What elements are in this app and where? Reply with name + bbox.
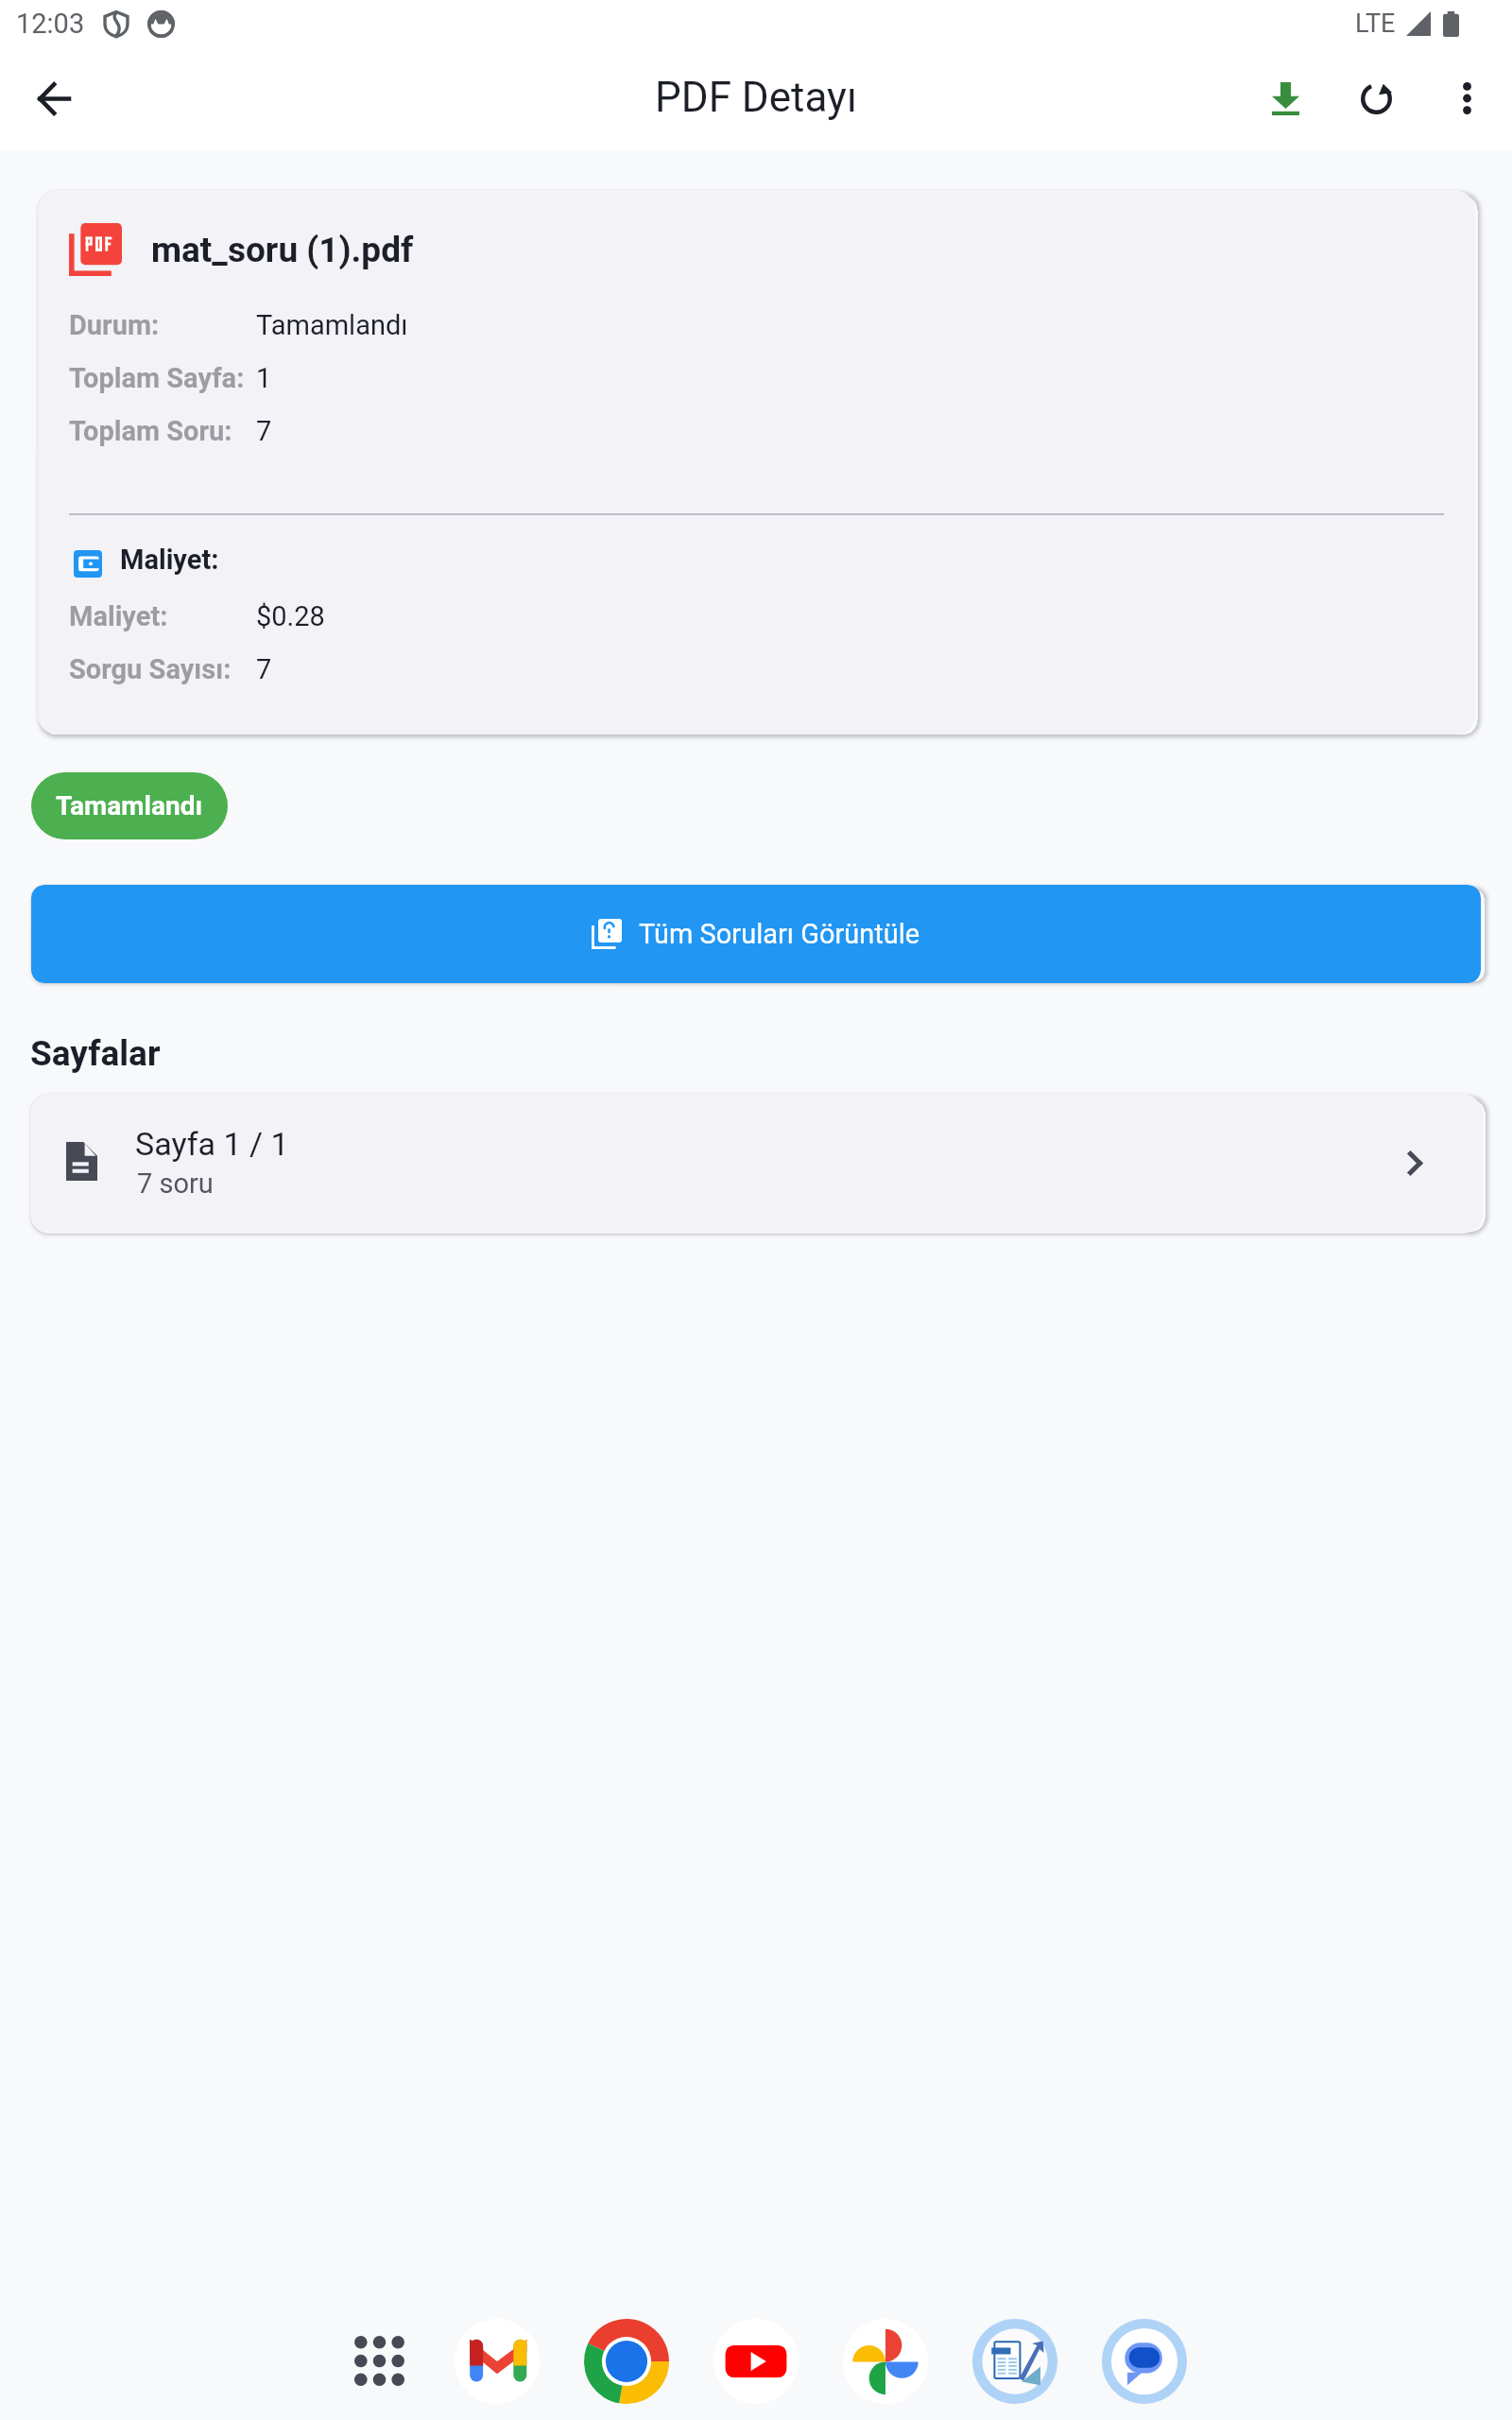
staticText: 7 [256,415,272,447]
staticText: Sorgu Sayısı: [69,653,232,685]
staticText: Tamamlandı [256,309,408,341]
button[interactable]: Photos [820,2296,950,2420]
staticText: $0.28 [256,600,325,632]
button[interactable]: Back [15,60,91,136]
button[interactable]: Sayfa 1 / 1 [30,1094,1482,1234]
button[interactable]: All apps [315,2296,432,2420]
button[interactable]: More options [1431,62,1503,134]
staticText: Maliyet: [69,600,168,632]
button[interactable]: Chrome [561,2296,691,2420]
button[interactable]: Refresh [1340,62,1412,134]
staticText: Sayfalar [30,1033,161,1074]
button[interactable]: Gmail [432,2296,561,2420]
staticText: 1 [256,362,272,394]
staticText: Toplam Sayfa: [69,362,245,394]
button[interactable]: Download [1249,62,1321,134]
staticText: Tüm Soruları Görüntüle [639,918,920,950]
button[interactable]: YouTube [691,2296,820,2420]
staticText: Maliyet: [120,544,219,576]
staticText: 7 soru [137,1167,214,1200]
button[interactable]: PDF Soru [950,2296,1079,2420]
staticText: LTE [1355,9,1396,39]
button[interactable]: Tamamlandı [31,772,228,839]
staticText: PDF Detayı [655,73,857,122]
staticText: Durum: [69,309,160,341]
staticText: 12:03 [16,8,85,40]
staticText: Toplam Soru: [69,415,232,447]
staticText: Sayfa 1 / 1 [135,1125,289,1163]
staticText: 7 [256,653,272,685]
staticText: mat_soru (1).pdf [151,230,414,270]
staticText: Tamamlandı [56,790,203,821]
button[interactable]: Tüm Soruları Görüntüle [31,885,1481,983]
button[interactable]: Messages [1079,2296,1209,2420]
